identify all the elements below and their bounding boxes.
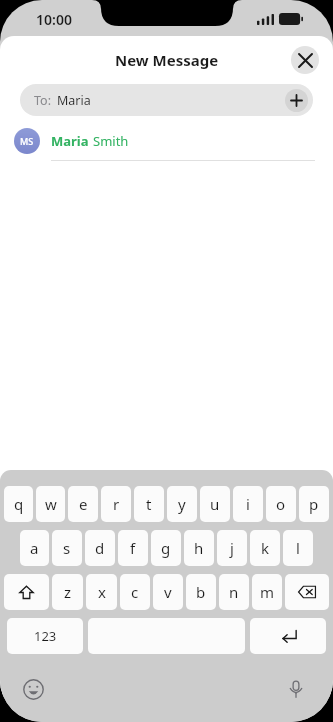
button[interactable]: j xyxy=(217,530,247,566)
button[interactable]: y xyxy=(167,486,197,522)
staticText: x xyxy=(98,582,106,602)
button[interactable]: i xyxy=(233,486,263,522)
button[interactable]: s xyxy=(52,530,82,566)
button[interactable]: MS xyxy=(0,122,333,161)
staticText: 10:00 xyxy=(36,10,72,29)
button[interactable]: t xyxy=(134,486,164,522)
staticText: p xyxy=(309,494,319,514)
button[interactable]: a xyxy=(20,530,49,566)
button[interactable]: To: xyxy=(20,84,313,116)
button[interactable]: Add contact xyxy=(285,89,308,112)
button[interactable]: f xyxy=(118,530,148,566)
button[interactable]: m xyxy=(252,574,282,610)
staticText: q xyxy=(14,494,24,514)
staticText: i xyxy=(246,494,250,514)
staticText: 123 xyxy=(34,627,57,645)
button[interactable]: w xyxy=(36,486,65,522)
staticText: e xyxy=(79,494,88,514)
button[interactable]: d xyxy=(85,530,115,566)
staticText: f xyxy=(130,538,136,558)
button[interactable]: c xyxy=(120,574,150,610)
staticText: c xyxy=(131,582,139,602)
button[interactable]: p xyxy=(299,486,329,522)
staticText: v xyxy=(164,582,172,602)
staticText: z xyxy=(64,582,72,602)
button[interactable]: x xyxy=(86,574,117,610)
staticText: h xyxy=(194,538,204,558)
staticText: t xyxy=(146,494,152,514)
staticText: Smith xyxy=(93,132,129,150)
staticText: j xyxy=(230,538,234,558)
button[interactable]: b xyxy=(186,574,216,610)
button[interactable]: v xyxy=(153,574,183,610)
staticText: l xyxy=(296,538,300,558)
button[interactable]: h xyxy=(184,530,214,566)
button[interactable]: Return xyxy=(250,618,326,654)
staticText: o xyxy=(276,494,286,514)
staticText: w xyxy=(45,494,57,514)
staticText: m xyxy=(260,582,275,602)
button[interactable]: o xyxy=(266,486,296,522)
staticText: u xyxy=(210,494,220,514)
button[interactable]: r xyxy=(101,486,131,522)
staticText: b xyxy=(196,582,206,602)
button[interactable]: k xyxy=(250,530,280,566)
staticText: s xyxy=(63,538,71,558)
button[interactable]: e xyxy=(68,486,98,522)
button[interactable]: Shift xyxy=(4,574,49,610)
button[interactable]: Dictate xyxy=(281,674,311,704)
button[interactable]: Emoji xyxy=(18,674,48,704)
staticText: To: xyxy=(34,92,51,109)
button[interactable]: u xyxy=(200,486,230,522)
staticText: MS xyxy=(20,135,34,147)
button[interactable]: z xyxy=(52,574,83,610)
button[interactable]: l xyxy=(283,530,313,566)
staticText: k xyxy=(261,538,270,558)
staticText: a xyxy=(30,538,39,558)
staticText: y xyxy=(178,494,186,514)
button[interactable]: Close xyxy=(291,46,319,74)
staticText: n xyxy=(229,582,239,602)
staticText: r xyxy=(113,494,120,514)
staticText: g xyxy=(161,538,171,558)
button[interactable]: Backspace xyxy=(285,574,329,610)
button[interactable]: 123 xyxy=(7,618,83,654)
staticText: d xyxy=(95,538,105,558)
button[interactable]: q xyxy=(4,486,33,522)
staticText: New Message xyxy=(115,50,219,70)
button[interactable]: g xyxy=(151,530,181,566)
staticText: Maria xyxy=(57,92,91,109)
button[interactable]: n xyxy=(219,574,249,610)
staticText: Maria xyxy=(51,132,89,150)
